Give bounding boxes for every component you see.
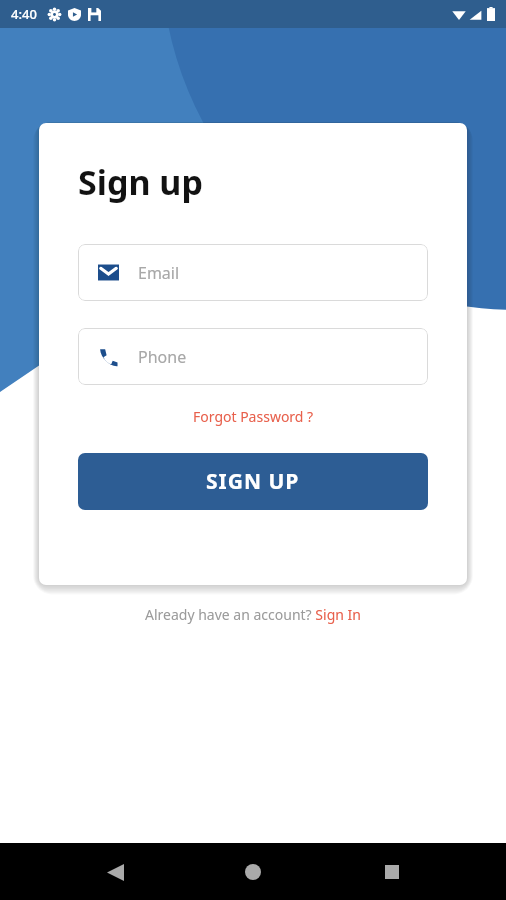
button[interactable]: Back <box>91 848 139 896</box>
staticText: 4:40 <box>11 5 37 23</box>
button[interactable]: Home <box>229 848 277 896</box>
button[interactable]: Already have an account? Sign In <box>0 605 506 624</box>
staticText: Already have an account? Sign In <box>145 605 361 624</box>
staticText: Forgot Password ? <box>193 407 314 426</box>
button[interactable]: Recent apps <box>368 848 416 896</box>
button[interactable]: Email <box>78 244 428 301</box>
button[interactable]: SIGN UP <box>78 453 428 510</box>
button[interactable]: Forgot Password ? <box>39 407 467 426</box>
staticText: Phone <box>138 346 187 368</box>
button[interactable]: Phone <box>78 328 428 385</box>
staticText: Sign up <box>78 159 203 205</box>
staticText: Email <box>138 262 180 284</box>
staticText: SIGN UP <box>206 467 300 496</box>
